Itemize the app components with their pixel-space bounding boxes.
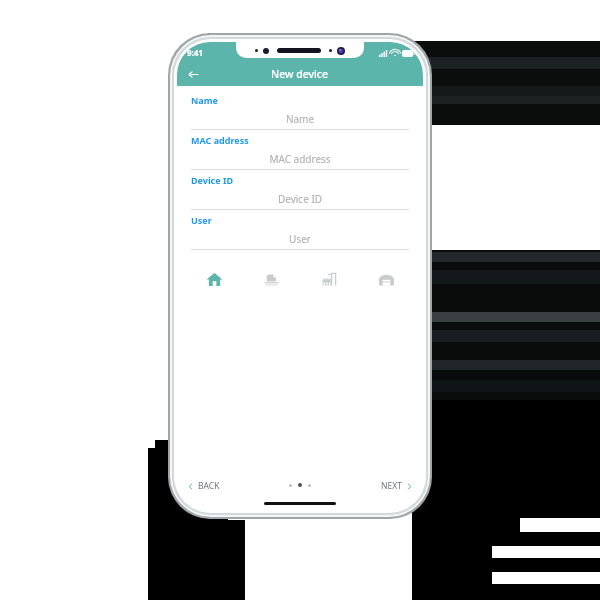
button[interactable]: Home: [201, 266, 227, 292]
staticText: MAC address: [191, 134, 249, 146]
button[interactable]: Name: [191, 94, 409, 134]
staticText: Name: [191, 112, 409, 126]
staticText: BACK: [198, 480, 220, 492]
staticText: NEXT: [381, 480, 402, 492]
staticText: User: [191, 232, 409, 246]
staticText: 9:41: [187, 47, 203, 58]
staticText: User: [191, 214, 212, 226]
staticText: New device: [271, 67, 329, 81]
staticText: Device ID: [191, 192, 409, 206]
button[interactable]: User: [191, 214, 409, 254]
button[interactable]: MAC address: [191, 134, 409, 174]
button[interactable]: Back: [183, 64, 203, 84]
button[interactable]: Building: [258, 266, 284, 292]
staticText: MAC address: [191, 152, 409, 166]
button[interactable]: Device ID: [191, 174, 409, 214]
staticText: Name: [191, 94, 218, 106]
button[interactable]: NEXT: [381, 480, 413, 492]
button[interactable]: Warehouse: [373, 266, 399, 292]
button[interactable]: BACK: [187, 480, 220, 492]
button[interactable]: Factory: [316, 266, 342, 292]
staticText: Device ID: [191, 174, 234, 186]
